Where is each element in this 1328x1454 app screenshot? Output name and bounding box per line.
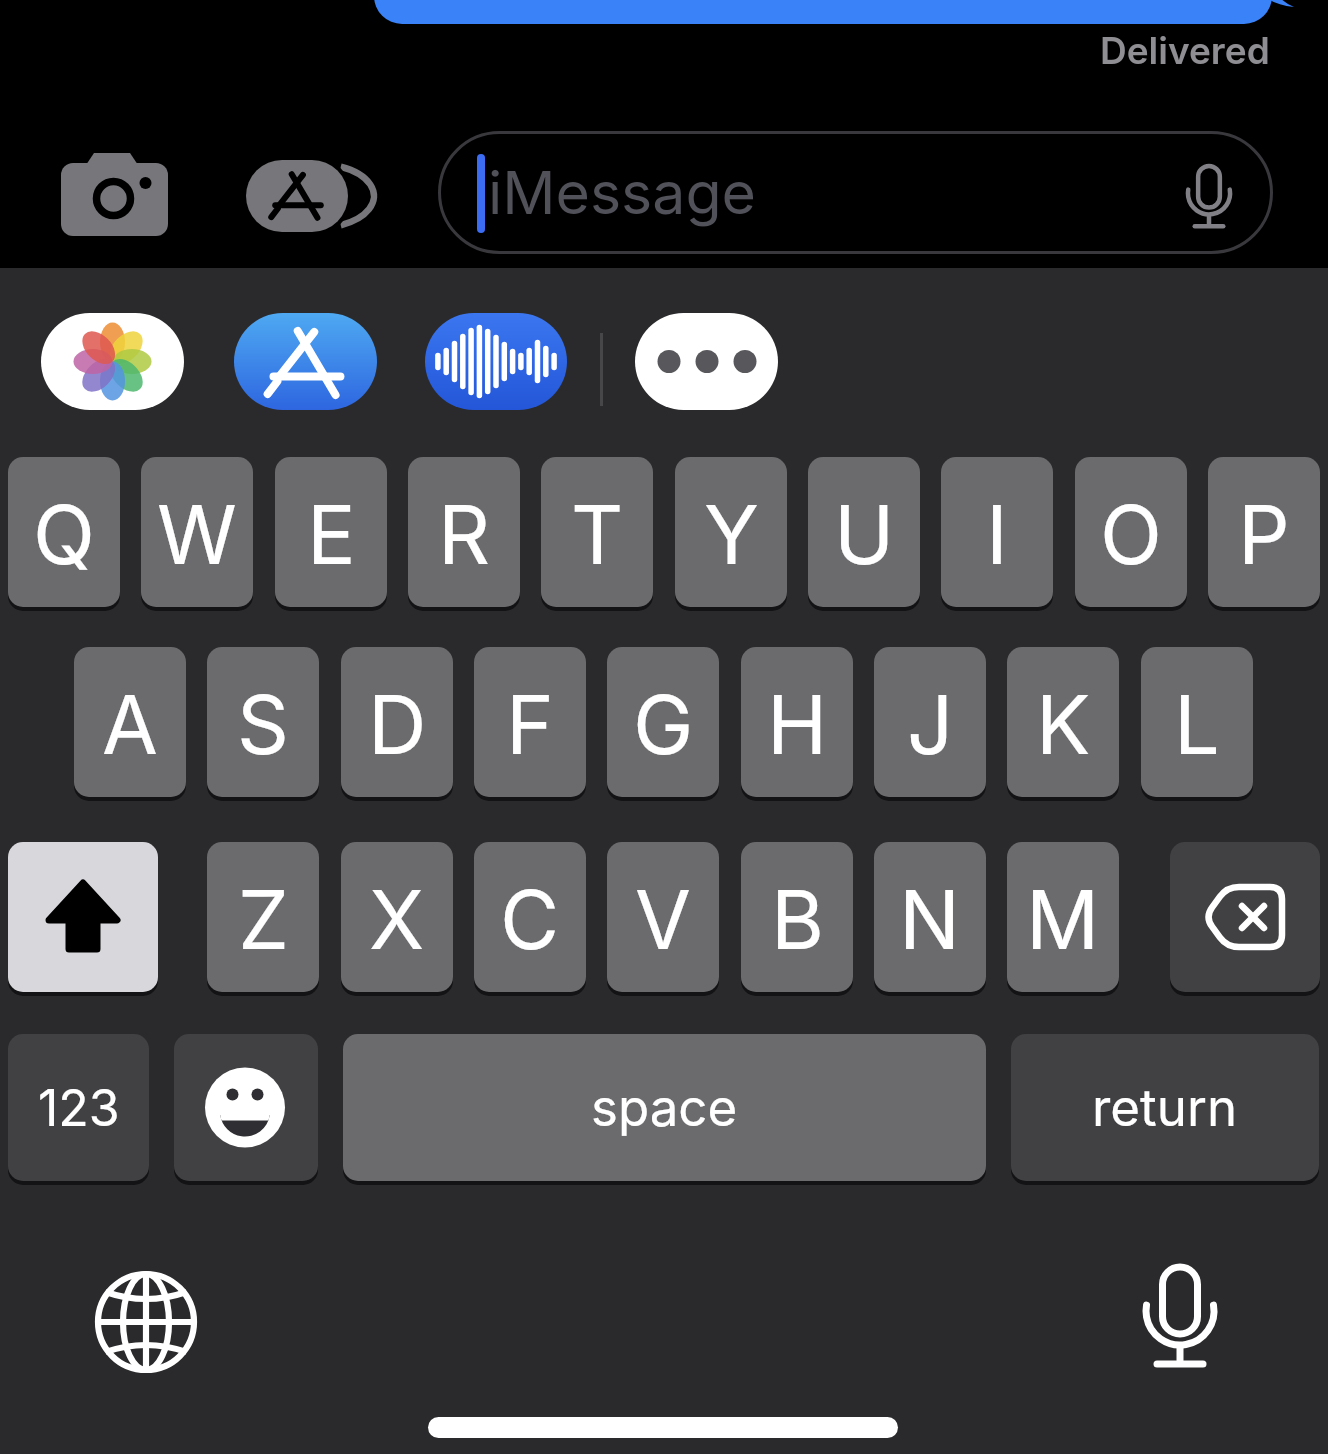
staticText: iMessage	[488, 157, 756, 228]
staticText: D	[368, 676, 427, 774]
staticText: S	[237, 676, 289, 774]
button[interactable]: D	[341, 647, 453, 797]
button[interactable]: return	[1011, 1034, 1319, 1181]
button[interactable]	[234, 313, 377, 410]
staticText: space	[591, 1077, 738, 1139]
staticText: H	[767, 676, 828, 774]
button[interactable]: Y	[675, 457, 787, 607]
staticText: B	[771, 871, 824, 969]
button[interactable]	[425, 313, 567, 410]
button[interactable]: H	[741, 647, 853, 797]
button[interactable]: P	[1208, 457, 1320, 607]
staticText: C	[500, 871, 560, 969]
button[interactable]: U	[808, 457, 920, 607]
button[interactable]: Q	[8, 457, 120, 607]
staticText: Delivered	[1100, 28, 1270, 68]
button[interactable]	[50, 145, 175, 245]
staticText: K	[1036, 676, 1091, 774]
staticText: R	[438, 486, 491, 584]
staticText: T	[571, 486, 624, 584]
staticText: O	[1100, 486, 1162, 584]
staticText: N	[899, 871, 961, 969]
button[interactable]	[41, 313, 184, 410]
staticText: V	[635, 871, 691, 969]
button[interactable]: S	[207, 647, 319, 797]
staticText: U	[834, 486, 895, 584]
staticText: G	[633, 676, 694, 774]
button[interactable]: C	[474, 842, 586, 992]
button[interactable]	[635, 313, 778, 410]
button[interactable]: L	[1141, 647, 1253, 797]
button[interactable]: B	[741, 842, 853, 992]
button[interactable]	[1128, 1262, 1238, 1377]
button[interactable]: M	[1007, 842, 1119, 992]
button[interactable]	[174, 1034, 318, 1181]
button[interactable]: W	[141, 457, 253, 607]
staticText: return	[1092, 1077, 1238, 1139]
button[interactable]: G	[607, 647, 719, 797]
button[interactable]: F	[474, 647, 586, 797]
button[interactable]: T	[541, 457, 653, 607]
staticText: M	[1026, 871, 1100, 969]
button[interactable]: K	[1007, 647, 1119, 797]
staticText: A	[102, 676, 158, 774]
button[interactable]: N	[874, 842, 986, 992]
staticText: P	[1238, 486, 1290, 584]
staticText: F	[506, 676, 554, 774]
button[interactable]: V	[607, 842, 719, 992]
button[interactable]: J	[874, 647, 986, 797]
staticText: J	[907, 676, 954, 774]
button[interactable]: A	[74, 647, 186, 797]
button[interactable]	[1170, 842, 1320, 992]
button[interactable]: O	[1075, 457, 1187, 607]
staticText: W	[157, 486, 237, 584]
button[interactable]: R	[408, 457, 520, 607]
staticText: Y	[704, 486, 759, 584]
button[interactable]: X	[341, 842, 453, 992]
button[interactable]	[92, 1268, 200, 1376]
button[interactable]	[8, 842, 158, 992]
button[interactable]: iMessage	[438, 131, 1273, 254]
button[interactable]: Z	[207, 842, 319, 992]
button[interactable]: I	[941, 457, 1053, 607]
staticText: I	[986, 486, 1008, 584]
staticText: L	[1174, 676, 1220, 774]
button[interactable]: space	[343, 1034, 986, 1181]
staticText: E	[307, 486, 356, 584]
staticText: 123	[38, 1078, 120, 1138]
staticText: X	[369, 871, 425, 969]
staticText: Q	[33, 486, 95, 584]
button[interactable]: E	[275, 457, 387, 607]
button[interactable]: 123	[8, 1034, 149, 1181]
staticText: Z	[238, 871, 289, 969]
button[interactable]	[238, 150, 383, 242]
